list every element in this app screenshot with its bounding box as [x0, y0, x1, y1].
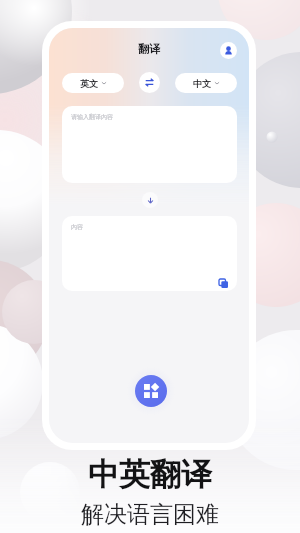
button[interactable]: 英文 [62, 73, 124, 93]
button[interactable]: 请输入翻译内容 [62, 106, 237, 183]
button[interactable]: 中文 [175, 73, 237, 93]
staticText: 中文 [193, 78, 211, 89]
staticText: 内容 [71, 223, 83, 231]
button[interactable]: Apps [135, 375, 167, 407]
button[interactable]: Translate [142, 192, 158, 208]
button[interactable]: Profile [220, 42, 237, 59]
staticText: 英文 [80, 78, 98, 89]
staticText: 请输入翻译内容 [71, 113, 113, 121]
staticText: 解决语言困难 [81, 500, 219, 529]
button[interactable]: Copy [215, 275, 232, 291]
button[interactable]: Swap languages [139, 72, 160, 93]
button[interactable]: 内容 [62, 216, 237, 291]
staticText: 翻译 [138, 42, 160, 56]
staticText: 中英翻译 [88, 455, 212, 494]
